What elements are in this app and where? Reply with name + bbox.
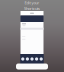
staticText: Shortcuts — [24, 6, 40, 11]
button[interactable]: Activity — [34, 54, 39, 64]
button[interactable]: Search — [25, 54, 30, 64]
button[interactable]: Create — [30, 54, 34, 64]
button[interactable]: Profile — [39, 54, 43, 64]
button[interactable]: Home — [20, 54, 25, 64]
staticText: Edit your — [24, 0, 39, 5]
